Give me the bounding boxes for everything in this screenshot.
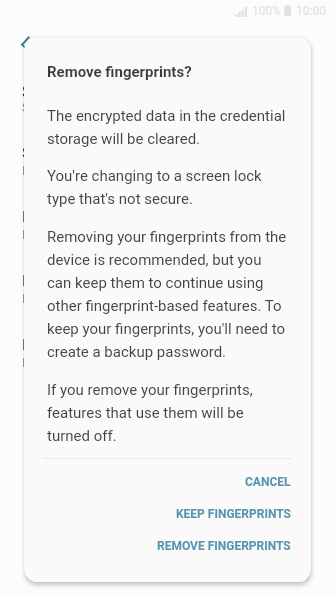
staticText: Remove fingerprints?	[47, 63, 192, 81]
staticText: PIN	[22, 272, 47, 290]
button[interactable]: KEEP FINGERPRINTS	[24, 498, 311, 529]
staticText: Select a screen lock type	[22, 100, 166, 115]
staticText: Pattern	[22, 208, 71, 226]
staticText: Password	[22, 336, 89, 354]
button[interactable]: Navigate up	[10, 28, 38, 56]
staticText: KEEP FINGERPRINTS	[176, 507, 291, 521]
button[interactable]: REMOVE FINGERPRINTS	[24, 530, 311, 561]
staticText: Medium security	[22, 163, 119, 178]
button[interactable]: CANCEL	[24, 466, 311, 497]
staticText: 10:00	[296, 4, 326, 18]
staticText: CANCEL	[245, 475, 291, 489]
staticText: The encrypted data in the credential sto…	[47, 107, 286, 148]
staticText: Screen lock type	[22, 81, 157, 102]
staticText: If you remove your fingerprints, feature…	[47, 381, 253, 445]
staticText: Swipe	[22, 144, 63, 162]
staticText: Removing your fingerprints from the devi…	[47, 228, 287, 361]
staticText: Medium security	[22, 227, 119, 242]
staticText: REMOVE FINGERPRINTS	[157, 539, 291, 553]
staticText: 100%	[252, 4, 282, 18]
staticText: You're changing to a screen lock type th…	[47, 167, 262, 208]
staticText: High security	[22, 355, 98, 370]
staticText: Medium security	[22, 291, 119, 306]
